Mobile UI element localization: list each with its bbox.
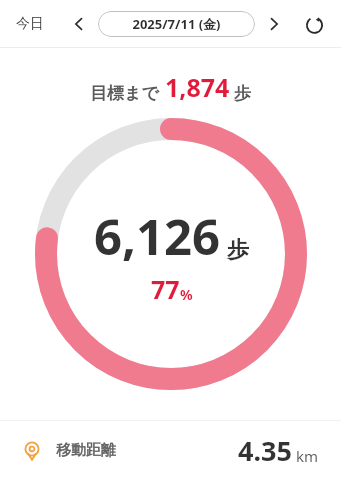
staticText: 4.35	[238, 432, 292, 469]
button[interactable]: 今日	[12, 9, 48, 39]
staticText: 目標まで	[90, 83, 159, 104]
button[interactable]: 移動距離	[0, 421, 341, 480]
button[interactable]: 2025/7/11 (金)	[98, 11, 255, 37]
staticText: 歩	[227, 236, 249, 264]
staticText: km	[296, 446, 319, 466]
staticText: 移動距離	[56, 441, 116, 460]
button[interactable]: 次の日	[261, 11, 287, 37]
staticText: 2025/7/11 (金)	[132, 15, 221, 33]
staticText: 6,126	[94, 203, 221, 270]
staticText: 今日	[16, 15, 44, 33]
staticText: 1,874	[165, 70, 230, 104]
button[interactable]: 更新	[299, 9, 329, 39]
staticText: 歩	[234, 83, 251, 104]
button[interactable]: 前の日	[66, 11, 92, 37]
staticText: 77	[151, 272, 180, 306]
staticText: %	[180, 285, 193, 304]
